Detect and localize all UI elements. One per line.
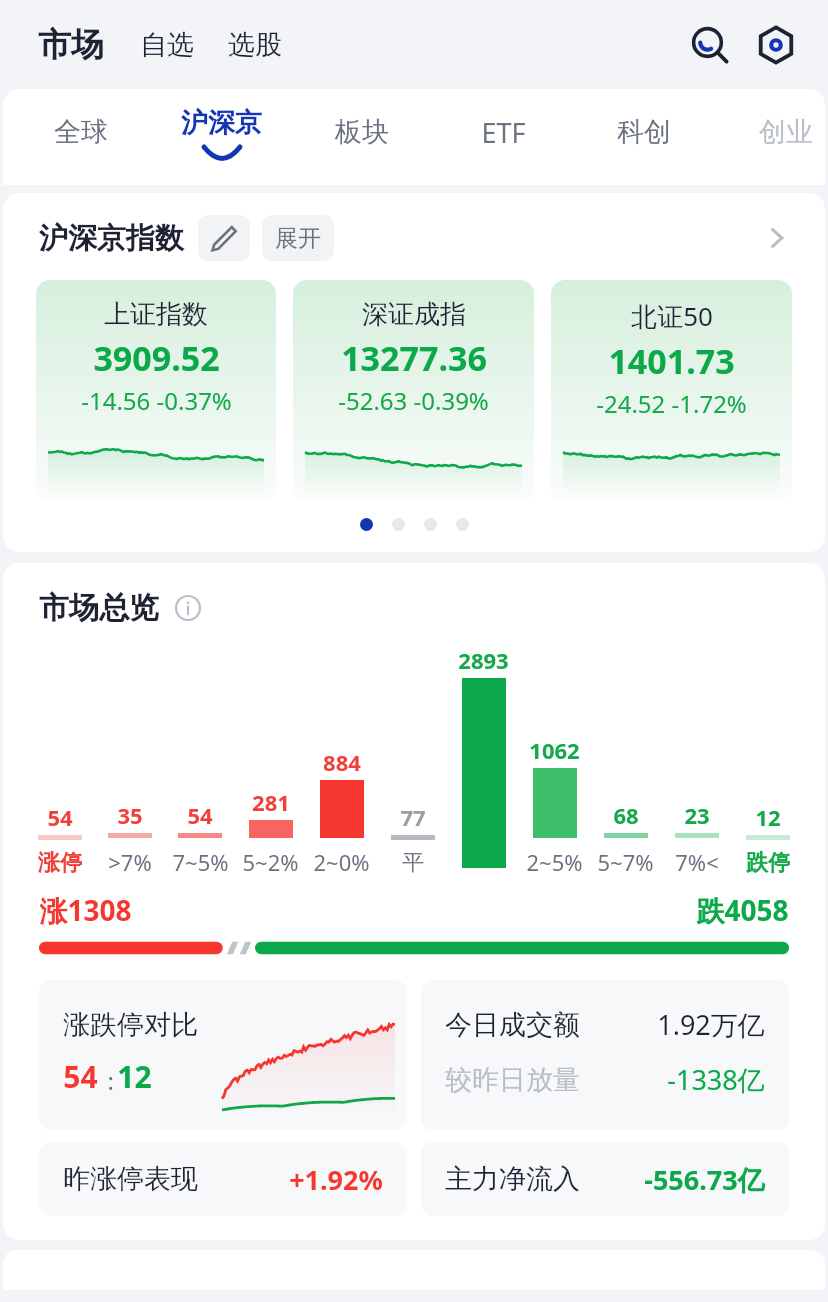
button[interactable]: Info [169, 589, 207, 627]
staticText: : [98, 1064, 117, 1097]
button[interactable]: 市场 [38, 24, 104, 66]
staticText: 深证成指 [362, 298, 466, 331]
button[interactable]: 自选 [140, 28, 194, 62]
button[interactable]: Search [684, 19, 736, 71]
staticText: 5~7% [597, 847, 654, 877]
button[interactable]: 281 [235, 645, 306, 877]
staticText: 板块 [335, 115, 389, 149]
staticText: 2~0% [313, 847, 370, 877]
staticText: 23 [684, 800, 710, 830]
button[interactable]: 全球 [38, 97, 124, 167]
staticText: 科创 [617, 115, 671, 149]
staticText: 展开 [275, 224, 321, 253]
staticText: -52.63 -0.39% [338, 384, 489, 417]
button[interactable]: 1062 [519, 645, 590, 877]
staticText: 较昨日放量 [445, 1063, 580, 1097]
button[interactable]: 科创 [601, 97, 687, 167]
button[interactable]: 创业 [743, 97, 825, 167]
staticText: 昨涨停表现 [63, 1162, 198, 1196]
button[interactable]: 今日成交额 [421, 980, 789, 1130]
staticText: 跌停 [746, 849, 790, 877]
staticText: 涨1308 [39, 891, 132, 929]
staticText: 今日成交额 [445, 1008, 580, 1042]
button[interactable]: 2893 [448, 645, 519, 877]
button[interactable]: 涨跌停对比 [39, 980, 407, 1130]
staticText: -14.56 -0.37% [81, 384, 232, 417]
staticText: 1062 [529, 735, 580, 765]
staticText: 平 [402, 849, 424, 877]
button[interactable]: More [755, 216, 799, 260]
staticText: -24.52 -1.72% [596, 387, 747, 420]
staticText: 3909.52 [93, 335, 220, 381]
staticText: 7%< [675, 847, 719, 877]
staticText: 13277.36 [341, 335, 487, 381]
staticText: ETF [481, 114, 526, 151]
staticText: 北证50 [631, 298, 713, 334]
button[interactable]: 35 [95, 645, 165, 877]
staticText: 884 [323, 747, 361, 777]
staticText: 54 [187, 800, 213, 830]
staticText: 1401.73 [608, 338, 735, 384]
staticText: +1.92% [289, 1161, 383, 1198]
staticText: 12 [117, 1056, 152, 1097]
button[interactable]: 54 [165, 645, 235, 877]
staticText: >7% [108, 847, 152, 877]
staticText: 市场总览 [39, 589, 159, 627]
button[interactable]: 上证指数 [36, 280, 276, 502]
button[interactable]: 12 [732, 645, 803, 877]
button[interactable]: 主力净流入 [421, 1142, 789, 1216]
staticText: 主力净流入 [445, 1162, 580, 1196]
staticText: 54 [47, 802, 73, 832]
staticText: 35 [117, 800, 143, 830]
staticText: 68 [613, 800, 639, 830]
staticText: 7~5% [172, 847, 229, 877]
staticText: 创业 [759, 115, 813, 149]
button[interactable]: 展开 [262, 215, 334, 261]
staticText: 5~2% [242, 847, 299, 877]
staticText: 沪深京指数 [39, 220, 184, 257]
button[interactable]: 68 [590, 645, 661, 877]
staticText: 54 [63, 1056, 98, 1097]
staticText: 全球 [54, 115, 108, 149]
button[interactable]: 北证50 [551, 280, 792, 502]
button[interactable]: 77 [377, 645, 448, 877]
staticText: 上证指数 [104, 298, 208, 331]
button[interactable]: 选股 [228, 28, 282, 62]
staticText: -556.73亿 [644, 1161, 765, 1198]
staticText: 涨停 [38, 849, 82, 877]
staticText: 77 [400, 802, 426, 832]
button[interactable]: 884 [306, 645, 377, 877]
staticText: 281 [252, 787, 290, 817]
button[interactable]: 昨涨停表现 [39, 1142, 407, 1216]
staticText: 沪深京 [181, 106, 262, 140]
button[interactable]: 深证成指 [293, 280, 534, 502]
staticText: 跌4058 [696, 891, 789, 929]
staticText: 2893 [458, 645, 509, 675]
staticText: 1.92万亿 [657, 1006, 765, 1043]
button[interactable]: 沪深京 [163, 97, 279, 167]
button[interactable]: 54 [25, 645, 95, 877]
staticText: -1338亿 [667, 1061, 765, 1098]
button[interactable]: Settings [750, 19, 802, 71]
staticText: 涨跌停对比 [63, 1008, 198, 1042]
staticText: 2~5% [526, 847, 583, 877]
button[interactable]: 板块 [319, 97, 405, 167]
button[interactable]: ETF [455, 97, 551, 167]
staticText: 12 [755, 802, 781, 832]
button[interactable]: Edit [198, 215, 250, 261]
button[interactable]: 23 [661, 645, 732, 877]
